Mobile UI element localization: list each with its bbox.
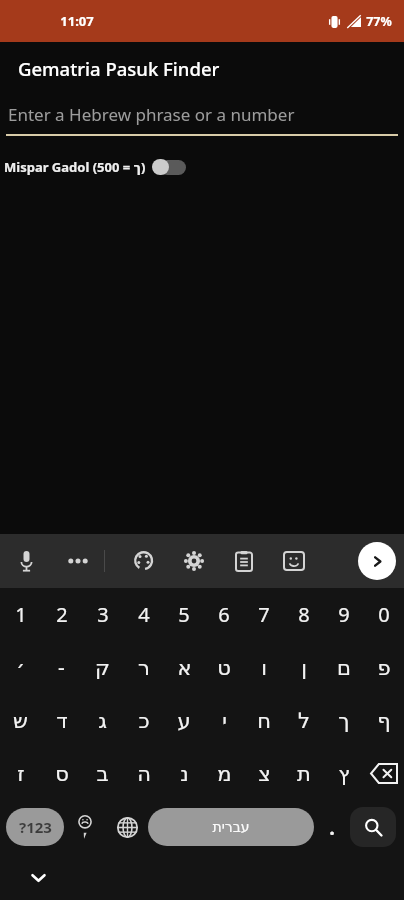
button[interactable]: ג (82, 694, 123, 747)
button[interactable]: ל (284, 694, 324, 747)
button[interactable]: ם (324, 641, 364, 694)
button[interactable]: ט (204, 641, 244, 694)
staticText: ך (338, 709, 350, 733)
button[interactable]: צ (244, 747, 284, 800)
button[interactable]: ז (0, 747, 41, 800)
staticText: ן (301, 656, 307, 680)
staticText: ע (177, 709, 191, 733)
staticText: כ (138, 709, 150, 733)
button[interactable]: נ (164, 747, 204, 800)
button[interactable]: More options (52, 534, 104, 588)
staticText: 77% (366, 13, 392, 30)
staticText: Mispar Gadol (500 = ך) (4, 158, 146, 176)
staticText: 7 (258, 601, 270, 628)
button[interactable]: Search (350, 807, 396, 847)
staticText: עברית (212, 819, 250, 835)
button[interactable]: ד (41, 694, 82, 747)
staticText: ל (298, 709, 310, 733)
button[interactable]: ח (244, 694, 284, 747)
staticText: ט (217, 656, 231, 680)
button[interactable]: מ (204, 747, 244, 800)
button[interactable]: Emoji (64, 800, 106, 854)
button[interactable]: ב (82, 747, 123, 800)
button[interactable]: 0 (364, 588, 404, 641)
button[interactable]: א (164, 641, 204, 694)
staticText: 4 (138, 601, 150, 628)
button[interactable]: ה (123, 747, 164, 800)
button[interactable]: ן (284, 641, 324, 694)
staticText: - (58, 653, 65, 682)
button[interactable]: Backspace (364, 747, 404, 800)
staticText: ת (297, 762, 311, 786)
staticText: 0 (378, 601, 390, 628)
button[interactable]: 3 (82, 588, 123, 641)
button[interactable]: ק (82, 641, 123, 694)
staticText: מ (217, 762, 232, 786)
button[interactable]: כ (123, 694, 164, 747)
button[interactable]: Hide keyboard (22, 862, 54, 894)
staticText: ש (13, 709, 28, 733)
button[interactable]: Change language (106, 800, 148, 854)
button[interactable]: Themes (119, 534, 169, 588)
staticText: ג (98, 709, 107, 733)
staticText: . (329, 814, 335, 841)
button[interactable]: 5 (164, 588, 204, 641)
button[interactable]: - (41, 641, 82, 694)
staticText: 2 (56, 601, 68, 628)
button[interactable]: 4 (123, 588, 164, 641)
staticText: Enter a Hebrew phrase or a number (8, 103, 295, 126)
button[interactable]: 2 (41, 588, 82, 641)
staticText: ב (96, 762, 109, 786)
staticText: 3 (97, 601, 109, 628)
staticText: ה (137, 762, 151, 786)
button[interactable]: ץ (324, 747, 364, 800)
staticText: נ (180, 762, 189, 786)
button[interactable]: פ (364, 641, 404, 694)
button[interactable]: . (314, 800, 350, 854)
button[interactable]: ס (41, 747, 82, 800)
staticText: 6 (218, 601, 230, 628)
staticText: ף (377, 709, 391, 733)
button[interactable]: ף (364, 694, 404, 747)
staticText: 9 (338, 601, 350, 628)
button[interactable]: ך (324, 694, 364, 747)
button[interactable]: Expand toolbar (358, 542, 396, 580)
button[interactable]: 8 (284, 588, 324, 641)
staticText: ח (257, 709, 271, 733)
staticText: ק (95, 656, 110, 680)
staticText: 11:07 (60, 12, 94, 30)
button[interactable]: Settings (169, 534, 219, 588)
staticText: פ (377, 656, 391, 680)
staticText: ?123 (19, 817, 52, 837)
staticText: ס (55, 762, 69, 786)
button[interactable]: ע (164, 694, 204, 747)
staticText: א (177, 656, 192, 680)
button[interactable]: ת (284, 747, 324, 800)
staticText: ו (261, 656, 267, 680)
staticText: 1 (15, 601, 27, 628)
staticText: Gematria Pasuk Finder (18, 56, 220, 81)
staticText: 5 (178, 601, 190, 628)
button[interactable]: י (204, 694, 244, 747)
button[interactable]: 1 (0, 588, 41, 641)
button[interactable]: Stickers (269, 534, 319, 588)
button[interactable]: Clipboard (219, 534, 269, 588)
button[interactable]: 7 (244, 588, 284, 641)
button[interactable]: ?123 (6, 808, 64, 846)
button[interactable]: ש (0, 694, 41, 747)
button[interactable]: ר (123, 641, 164, 694)
button[interactable]: 9 (324, 588, 364, 641)
button[interactable]: 6 (204, 588, 244, 641)
button[interactable]: Voice input (0, 534, 52, 588)
staticText: ז (17, 762, 25, 786)
staticText: 8 (298, 601, 310, 628)
staticText: י (222, 709, 227, 733)
button[interactable]: Mispar Gadol (500 = ך) (0, 154, 196, 180)
button[interactable]: ו (244, 641, 284, 694)
staticText: ׳ (16, 656, 25, 680)
button[interactable]: ׳ (0, 641, 41, 694)
staticText: ם (337, 656, 351, 680)
button[interactable]: עברית (148, 808, 314, 846)
staticText: ד (56, 709, 68, 733)
staticText: ץ (338, 762, 350, 786)
